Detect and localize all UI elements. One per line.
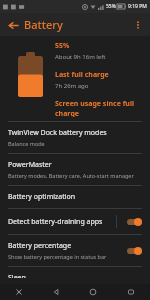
staticText: 55%	[55, 41, 70, 51]
button[interactable]: Recents	[112, 284, 150, 300]
button[interactable]: Back	[4, 16, 22, 34]
staticText: Battery optimization	[8, 192, 76, 202]
staticText: Last full charge	[55, 70, 109, 80]
staticText: PowerMaster	[8, 160, 52, 170]
button[interactable]: Sleep	[0, 267, 150, 284]
staticText: 55%	[106, 3, 116, 10]
button[interactable]: Back	[37, 284, 74, 300]
staticText: Battery modes, Battery care, Auto-start …	[8, 172, 134, 179]
button[interactable]: PowerMaster	[0, 154, 150, 185]
staticText: Screen usage since full charge	[55, 99, 150, 117]
button[interactable]: Battery percentage	[0, 235, 150, 266]
staticText: Detect battery-draining apps	[8, 217, 103, 227]
staticText: Show battery percentage in status bar	[8, 253, 107, 260]
staticText: Battery percentage	[8, 241, 72, 251]
staticText: Sleep	[8, 273, 26, 278]
button[interactable]: Detect battery-draining apps	[0, 209, 150, 234]
staticText: Battery	[24, 17, 63, 32]
staticText: About 9h 16m left	[55, 53, 106, 61]
button[interactable]: Detect battery-draining apps	[125, 216, 144, 228]
staticText: 7h 26m ago	[55, 82, 89, 90]
button[interactable]: TwinView Dock battery modes	[0, 122, 150, 153]
staticText: 9:19 PM	[128, 3, 147, 10]
button[interactable]: More options	[129, 16, 147, 34]
button[interactable]: Assistant	[0, 284, 37, 300]
button[interactable]: Battery optimization	[0, 186, 150, 208]
staticText: TwinView Dock battery modes	[8, 128, 107, 138]
button[interactable]: Battery percentage	[125, 245, 144, 257]
button[interactable]: Home	[74, 284, 112, 300]
staticText: Balance mode	[8, 140, 45, 147]
